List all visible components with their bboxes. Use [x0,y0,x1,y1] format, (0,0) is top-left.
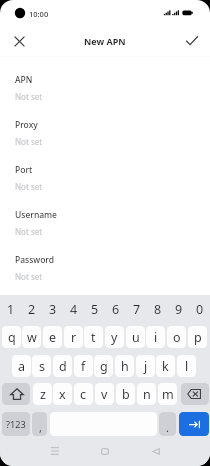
button[interactable]: . [159,412,176,436]
staticText: 10:00 [29,9,49,19]
button[interactable]: 9 [168,295,189,324]
button[interactable]: f [74,355,93,377]
button[interactable]: r [64,326,83,348]
staticText: ?123 [6,418,26,431]
staticText: d [59,358,67,375]
button[interactable]: Proxy [0,119,210,164]
staticText: . [166,420,169,435]
staticText: v [101,386,108,403]
button[interactable]: e [43,326,62,348]
button[interactable]: APN [0,74,210,119]
button[interactable]: q [2,326,21,348]
button[interactable]: d [53,355,72,377]
button[interactable]: 0 [189,295,210,324]
staticText: 2 [28,301,36,318]
staticText: n [143,386,151,403]
staticText: 4 [70,301,78,318]
button[interactable]: a [12,355,31,377]
button[interactable]: Home [94,440,116,462]
staticText: h [121,358,129,375]
staticText: APN [15,74,33,86]
staticText: y [111,329,118,346]
button[interactable]: 1 [0,295,21,324]
button[interactable]: ?123 [2,412,30,436]
button[interactable]: Back [145,440,167,462]
staticText: Not set [15,181,43,192]
button[interactable]: v [95,383,114,405]
button[interactable]: y [105,326,124,348]
button[interactable]: Close [9,31,29,51]
button[interactable]: Backspace [181,383,209,405]
staticText: r [71,329,77,346]
button[interactable]: w [22,326,41,348]
button[interactable]: Port [0,164,210,209]
button[interactable]: Recents [44,440,66,462]
staticText: Not set [15,226,43,237]
staticText: e [49,329,57,346]
staticText: p [194,329,202,346]
button[interactable]: 4 [63,295,84,324]
staticText: 0 [196,301,204,318]
button[interactable]: h [115,355,134,377]
button[interactable]: l [177,355,196,377]
staticText: x [59,386,66,403]
staticText: b [122,386,130,403]
button[interactable]: g [94,355,113,377]
staticText: q [8,329,16,346]
staticText: i [154,329,158,346]
staticText: Not set [15,91,43,102]
button[interactable]: 8 [147,295,168,324]
button[interactable]: 2 [21,295,42,324]
staticText: Password [15,254,55,266]
staticText: Port [15,164,33,176]
staticText: t [91,329,96,346]
button[interactable]: t [84,326,103,348]
staticText: u [132,329,140,346]
button[interactable]: b [116,383,135,405]
staticText: 5 [91,301,99,318]
button[interactable]: 7 [126,295,147,324]
button[interactable]: , [32,412,47,436]
staticText: 8 [154,301,162,318]
staticText: f [81,358,86,375]
button[interactable]: Shift [2,383,30,405]
staticText: 6 [112,301,120,318]
button[interactable]: 6 [105,295,126,324]
staticText: g [100,358,108,375]
staticText: c [80,386,87,403]
button[interactable]: z [33,383,52,405]
button[interactable]: 5 [84,295,105,324]
button[interactable]: i [146,326,165,348]
staticText: 3 [49,301,57,318]
staticText: m [162,386,174,403]
staticText: s [39,358,45,375]
button[interactable]: o [167,326,186,348]
button[interactable]: p [188,326,207,348]
button[interactable]: Username [0,209,210,254]
staticText: j [144,358,148,375]
button[interactable]: Save [182,31,202,51]
staticText: 7 [133,301,141,318]
staticText: k [162,358,169,375]
button[interactable]: m [158,383,177,405]
button[interactable]: j [136,355,155,377]
staticText: w [27,329,37,346]
staticText: 9 [175,301,183,318]
button[interactable]: n [137,383,156,405]
button[interactable]: Password [0,254,210,299]
button[interactable]: u [126,326,145,348]
button[interactable]: k [156,355,175,377]
button[interactable]: x [53,383,72,405]
button[interactable]: 3 [42,295,63,324]
staticText: Username [15,209,57,221]
staticText: l [185,358,189,375]
staticText: o [173,329,181,346]
staticText: a [18,358,26,375]
staticText: z [40,386,46,403]
button[interactable]: Next [179,412,209,436]
button[interactable]: s [32,355,51,377]
staticText: , [39,420,42,435]
staticText: Not set [15,271,43,282]
button[interactable]: c [74,383,93,405]
